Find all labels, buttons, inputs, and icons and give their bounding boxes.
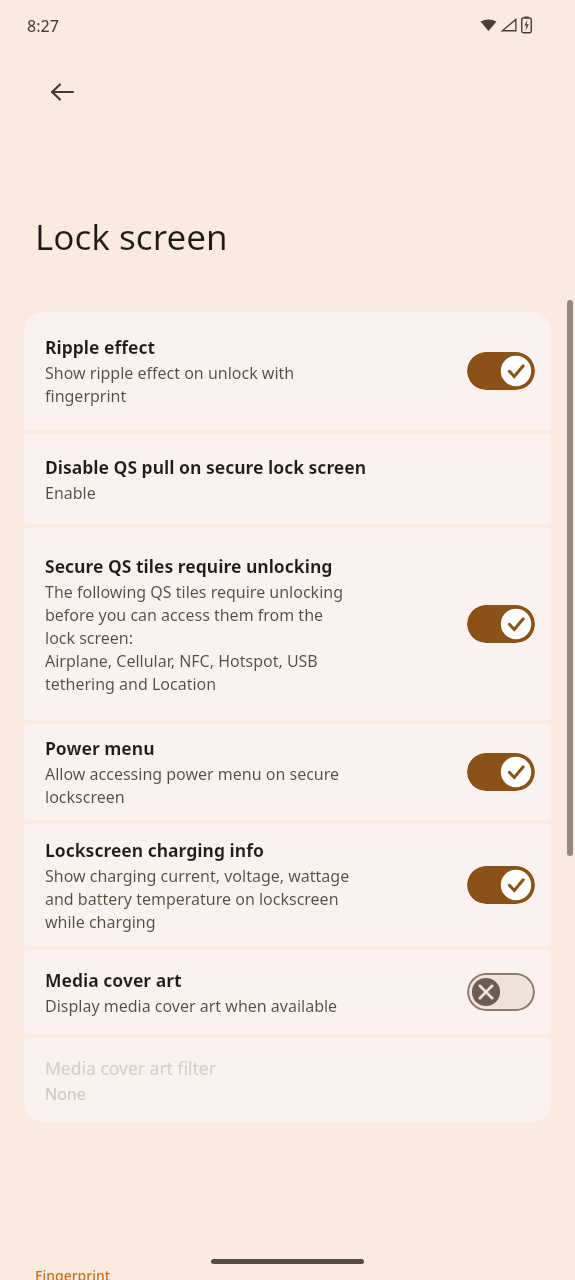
staticText: Fingerprint xyxy=(35,1266,111,1280)
staticText: The following QS tiles require unlocking… xyxy=(45,581,343,695)
button[interactable]: Enabled toggle xyxy=(467,866,535,904)
staticText: Allow accessing power menu on secure loc… xyxy=(45,763,340,808)
button[interactable]: Media cover art filter xyxy=(24,1038,551,1122)
staticText: Media cover art filter xyxy=(45,1056,216,1080)
button[interactable]: Ripple effect xyxy=(24,312,551,430)
staticText: Lockscreen charging info xyxy=(45,838,264,862)
button[interactable]: Power menu xyxy=(24,724,551,820)
button[interactable]: Back xyxy=(38,68,86,116)
button[interactable]: Enabled toggle xyxy=(467,753,535,791)
staticText: Media cover art xyxy=(45,968,182,992)
button[interactable]: Enabled toggle xyxy=(467,605,535,643)
staticText: Show charging current, voltage, wattage … xyxy=(45,865,350,933)
staticText: Lock screen xyxy=(35,213,228,261)
staticText: Enable xyxy=(45,482,96,504)
button[interactable]: Disabled toggle xyxy=(467,973,535,1011)
button[interactable]: Secure QS tiles require unlocking xyxy=(24,528,551,720)
staticText: Power menu xyxy=(45,736,155,760)
staticText: Ripple effect xyxy=(45,335,156,359)
staticText: 8:27 xyxy=(27,15,59,37)
button[interactable]: Lockscreen charging info xyxy=(24,824,551,946)
button[interactable]: Disable QS pull on secure lock screen xyxy=(24,434,551,524)
staticText: None xyxy=(45,1083,86,1105)
staticText: Disable QS pull on secure lock screen xyxy=(45,455,367,479)
button[interactable]: Enabled toggle xyxy=(467,352,535,390)
staticText: Show ripple effect on unlock with finger… xyxy=(45,362,295,407)
button[interactable]: Media cover art xyxy=(24,950,551,1034)
staticText: Secure QS tiles require unlocking xyxy=(45,554,333,578)
staticText: Display media cover art when available xyxy=(45,995,338,1017)
